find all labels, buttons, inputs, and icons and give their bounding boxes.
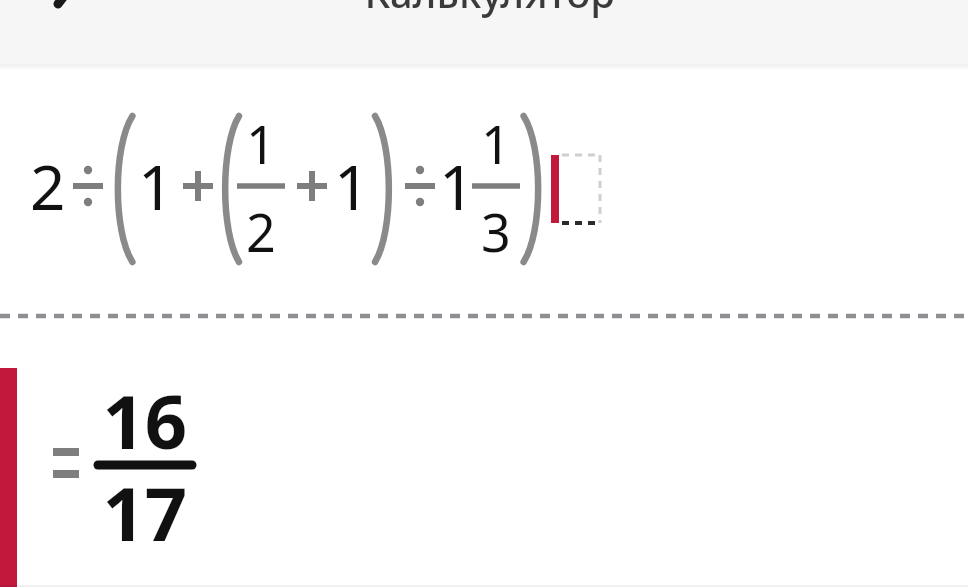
button[interactable]: Back <box>0 0 96 64</box>
